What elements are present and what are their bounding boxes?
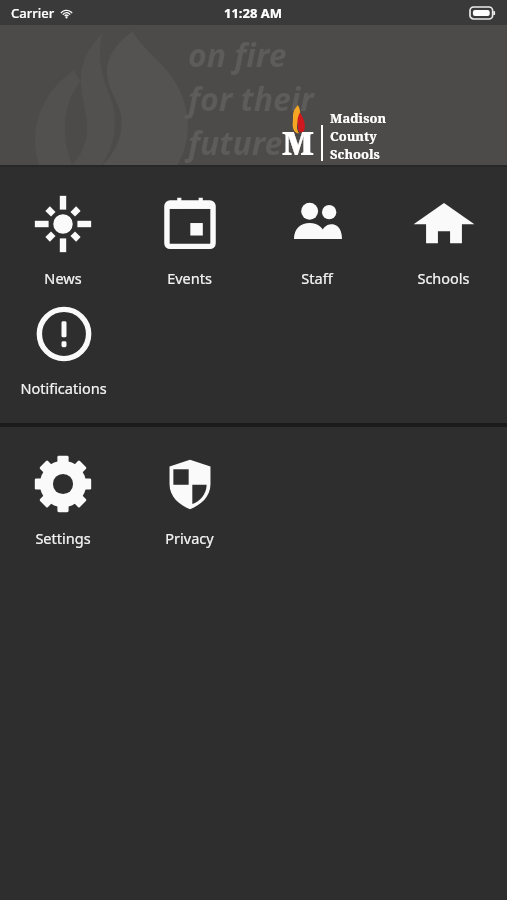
staticText: Privacy (165, 528, 214, 548)
button[interactable]: Privacy (126, 447, 253, 553)
staticText: Schools (417, 268, 470, 288)
button[interactable]: News (0, 187, 126, 293)
staticText: for their (188, 77, 314, 121)
staticText: Madison (330, 109, 387, 127)
button[interactable]: Notifications (0, 297, 127, 403)
staticText: M (282, 120, 314, 165)
button[interactable]: Staff (253, 187, 380, 293)
staticText: Carrier (11, 4, 55, 22)
staticText: News (44, 268, 82, 288)
staticText: Schools (330, 145, 380, 163)
staticText: on fire (188, 33, 287, 77)
staticText: County (330, 127, 377, 145)
staticText: future (188, 121, 283, 165)
button[interactable]: Schools (380, 187, 507, 293)
staticText: Settings (35, 528, 91, 548)
button[interactable]: Events (126, 187, 253, 293)
staticText: Staff (301, 268, 333, 288)
staticText: 11:28 AM (224, 4, 283, 22)
button[interactable]: Settings (0, 447, 126, 553)
staticText: Notifications (20, 378, 107, 398)
staticText: Events (167, 268, 212, 288)
